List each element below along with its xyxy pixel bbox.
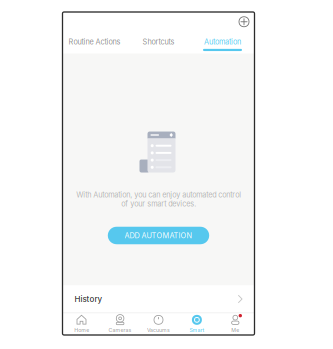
button[interactable]: ADD AUTOMATION xyxy=(108,227,209,244)
staticText: History xyxy=(74,294,102,304)
staticText: Home xyxy=(74,327,89,333)
staticText: With Automation, you can enjoy automated… xyxy=(76,190,241,208)
button[interactable]: Vacuums xyxy=(139,314,178,333)
button[interactable]: History xyxy=(62,285,254,312)
staticText: Me xyxy=(231,327,239,333)
staticText: Shortcuts xyxy=(142,37,174,46)
staticText: Automation xyxy=(204,37,241,46)
staticText: Smart xyxy=(189,327,204,333)
staticText: ADD AUTOMATION xyxy=(124,231,192,240)
staticText: Vacuums xyxy=(147,327,170,333)
button[interactable]: Shortcuts xyxy=(126,37,190,51)
button[interactable]: Home xyxy=(62,314,101,333)
staticText: Cameras xyxy=(109,327,132,333)
button[interactable]: Routine Actions xyxy=(62,37,126,51)
button[interactable]: Add xyxy=(237,15,254,32)
button[interactable]: Automation xyxy=(190,37,254,51)
button[interactable]: Me xyxy=(216,314,254,333)
staticText: Routine Actions xyxy=(68,37,120,46)
button[interactable]: Smart xyxy=(178,314,216,333)
button[interactable]: Cameras xyxy=(101,314,139,333)
